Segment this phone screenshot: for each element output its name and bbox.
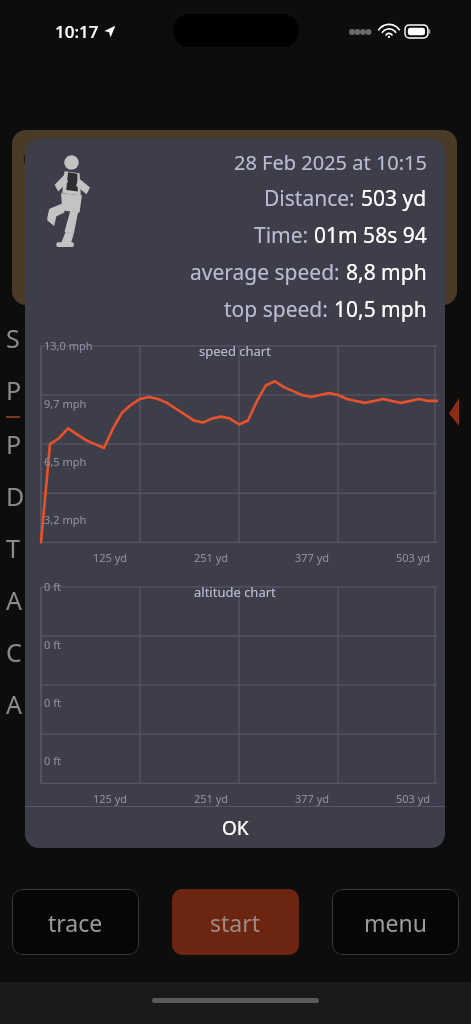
- staticText: 10:17: [55, 20, 99, 43]
- staticText: average speed:: [190, 258, 346, 287]
- button[interactable]: trace: [12, 889, 139, 955]
- staticText: 0 ft: [44, 579, 61, 594]
- staticText: 8,8 mph: [346, 258, 427, 287]
- staticText: P: [6, 427, 22, 461]
- staticText: A: [6, 583, 22, 617]
- staticText: altitude chart: [194, 583, 276, 601]
- staticText: OK: [222, 815, 249, 841]
- staticText: 9,7 mph: [44, 396, 87, 411]
- staticText: 3,2 mph: [44, 512, 87, 527]
- staticText: menu: [364, 907, 427, 938]
- staticText: T: [6, 531, 20, 565]
- staticText: 377 yd: [295, 550, 330, 565]
- staticText: A: [6, 687, 22, 721]
- staticText: top speed:: [224, 295, 334, 324]
- staticText: 377 yd: [295, 791, 330, 806]
- staticText: 0 ft: [44, 753, 61, 768]
- staticText: GPS training: [22, 140, 255, 175]
- staticText: 01m 58s 94: [314, 221, 427, 250]
- staticText: speed chart: [199, 342, 271, 360]
- staticText: 251 yd: [194, 791, 229, 806]
- staticText: 251 yd: [194, 550, 229, 565]
- staticText: S: [6, 321, 20, 355]
- staticText: trace: [48, 907, 103, 938]
- staticText: 503 yd: [396, 791, 431, 806]
- staticText: 13,0 mph: [44, 338, 93, 353]
- staticText: 503 yd: [361, 184, 427, 213]
- staticText: 6,5 mph: [44, 454, 87, 469]
- staticText: D: [6, 479, 25, 513]
- staticText: C: [6, 635, 22, 669]
- staticText: Time:: [254, 221, 314, 250]
- staticText: P: [6, 373, 22, 407]
- staticText: 10,5 mph: [334, 295, 427, 324]
- button[interactable]: OK: [25, 807, 445, 848]
- staticText: 28 Feb 2025 at 10:15: [234, 149, 427, 176]
- staticText: 125 yd: [93, 791, 128, 806]
- staticText: start: [210, 907, 261, 938]
- staticText: 0 ft: [44, 637, 61, 652]
- staticText: Distance:: [264, 184, 361, 213]
- staticText: 503 yd: [396, 550, 431, 565]
- staticText: 0 ft: [44, 695, 61, 710]
- staticText: 125 yd: [93, 550, 128, 565]
- button[interactable]: menu: [332, 889, 459, 955]
- button[interactable]: start: [172, 889, 299, 955]
